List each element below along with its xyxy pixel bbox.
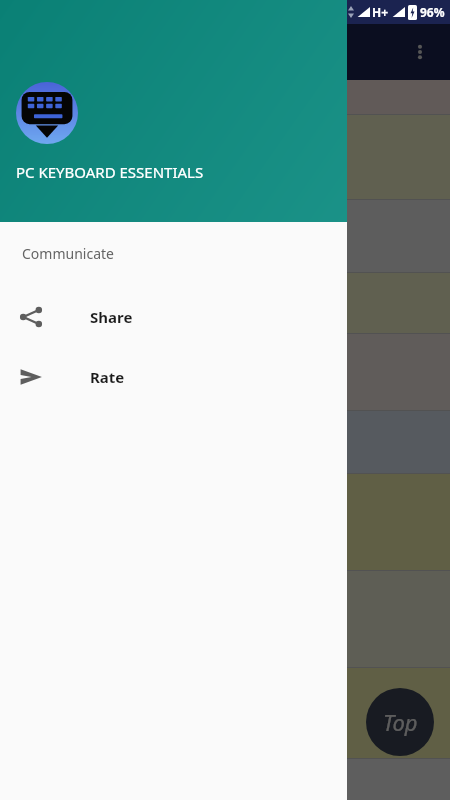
button[interactable]: at is ne xyxy=(0,115,450,199)
staticText: Communicate xyxy=(22,244,114,263)
staticText: 96% xyxy=(420,4,445,20)
staticText: at is ne xyxy=(4,136,33,179)
button[interactable] xyxy=(0,80,450,114)
button[interactable] xyxy=(0,411,450,473)
button[interactable]: Rate xyxy=(0,347,347,407)
button[interactable]: arrow xyxy=(0,668,450,758)
button[interactable]: D and en xyxy=(0,474,450,570)
button[interactable]: on the xyxy=(0,200,450,272)
staticText: H+ xyxy=(372,4,389,20)
button[interactable]: More options xyxy=(398,30,442,74)
button[interactable]: Top xyxy=(366,688,434,756)
button[interactable] xyxy=(0,273,450,333)
staticText: ndows) xyxy=(4,362,55,382)
button[interactable]: Share xyxy=(0,287,347,347)
button[interactable]: PC KEYBOARD ESSENTIALS xyxy=(0,0,347,222)
button[interactable]: ndows) xyxy=(0,334,450,410)
staticText: Top xyxy=(383,707,418,737)
staticText: Share xyxy=(90,307,133,327)
button[interactable]: D and open xyxy=(0,571,450,667)
staticText: PC KEYBOARD ESSENTIALS xyxy=(16,162,204,182)
staticText: Rate xyxy=(90,367,125,387)
